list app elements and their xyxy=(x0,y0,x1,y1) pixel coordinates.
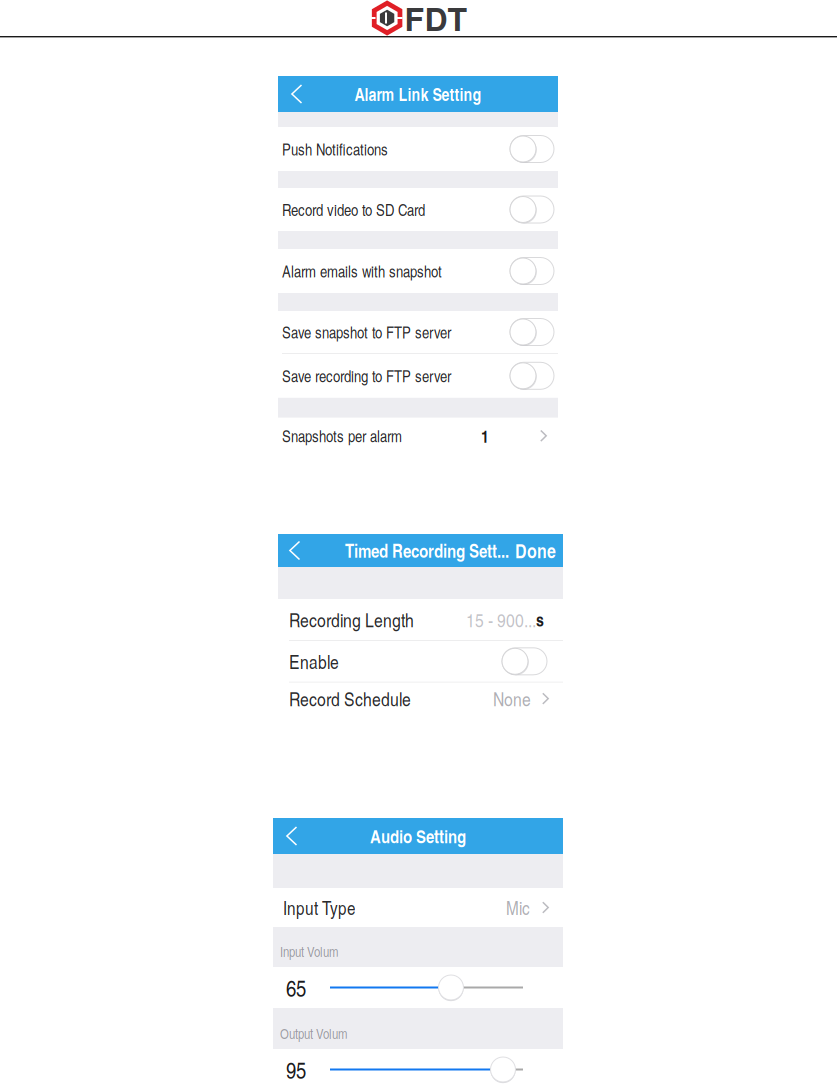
button[interactable]: Back xyxy=(273,818,311,854)
staticText: Done xyxy=(515,537,556,564)
staticText: 65 xyxy=(286,972,306,1003)
staticText: 15 - 900... xyxy=(466,606,536,633)
button[interactable]: Record video to SD Card xyxy=(278,188,558,231)
button[interactable]: Done xyxy=(515,534,563,567)
button[interactable]: Back xyxy=(278,76,316,112)
staticText: Enable xyxy=(289,648,339,674)
staticText: 95 xyxy=(286,1054,306,1085)
staticText: Timed Recording Sett... xyxy=(345,537,509,563)
staticText: Record video to SD Card xyxy=(282,198,425,220)
staticText: Record Schedule xyxy=(289,685,411,712)
button[interactable]: Snapshots per alarm xyxy=(278,418,558,454)
button[interactable]: Save recording to FTP server xyxy=(278,354,558,398)
staticText: Alarm Link Setting xyxy=(354,82,481,106)
staticText: Input Type xyxy=(283,895,356,920)
staticText: Output Volum xyxy=(280,1024,347,1043)
button[interactable]: Input Type xyxy=(273,888,563,927)
button[interactable]: Enable xyxy=(278,641,563,682)
staticText: Save snapshot to FTP server xyxy=(282,321,451,343)
staticText: Input Volum xyxy=(280,942,338,961)
staticText: Snapshots per alarm xyxy=(282,425,402,447)
button[interactable]: Save snapshot to FTP server xyxy=(278,311,558,353)
staticText: Recording Length xyxy=(289,606,414,633)
staticText: 1 xyxy=(481,424,489,448)
staticText: Save recording to FTP server xyxy=(282,365,451,387)
staticText: None xyxy=(493,685,531,712)
button[interactable]: Push Notifications xyxy=(278,127,558,171)
staticText: Push Notifications xyxy=(282,138,388,160)
staticText: Mic xyxy=(506,895,530,920)
staticText: s xyxy=(536,607,544,632)
staticText: FDT xyxy=(404,0,467,41)
button[interactable]: Back xyxy=(278,534,314,567)
button[interactable]: Alarm emails with snapshot xyxy=(278,249,558,293)
staticText: Alarm emails with snapshot xyxy=(282,260,442,282)
button[interactable]: Record Schedule xyxy=(278,683,563,715)
staticText: Audio Setting xyxy=(370,823,466,849)
button[interactable]: Recording Length xyxy=(278,599,563,640)
